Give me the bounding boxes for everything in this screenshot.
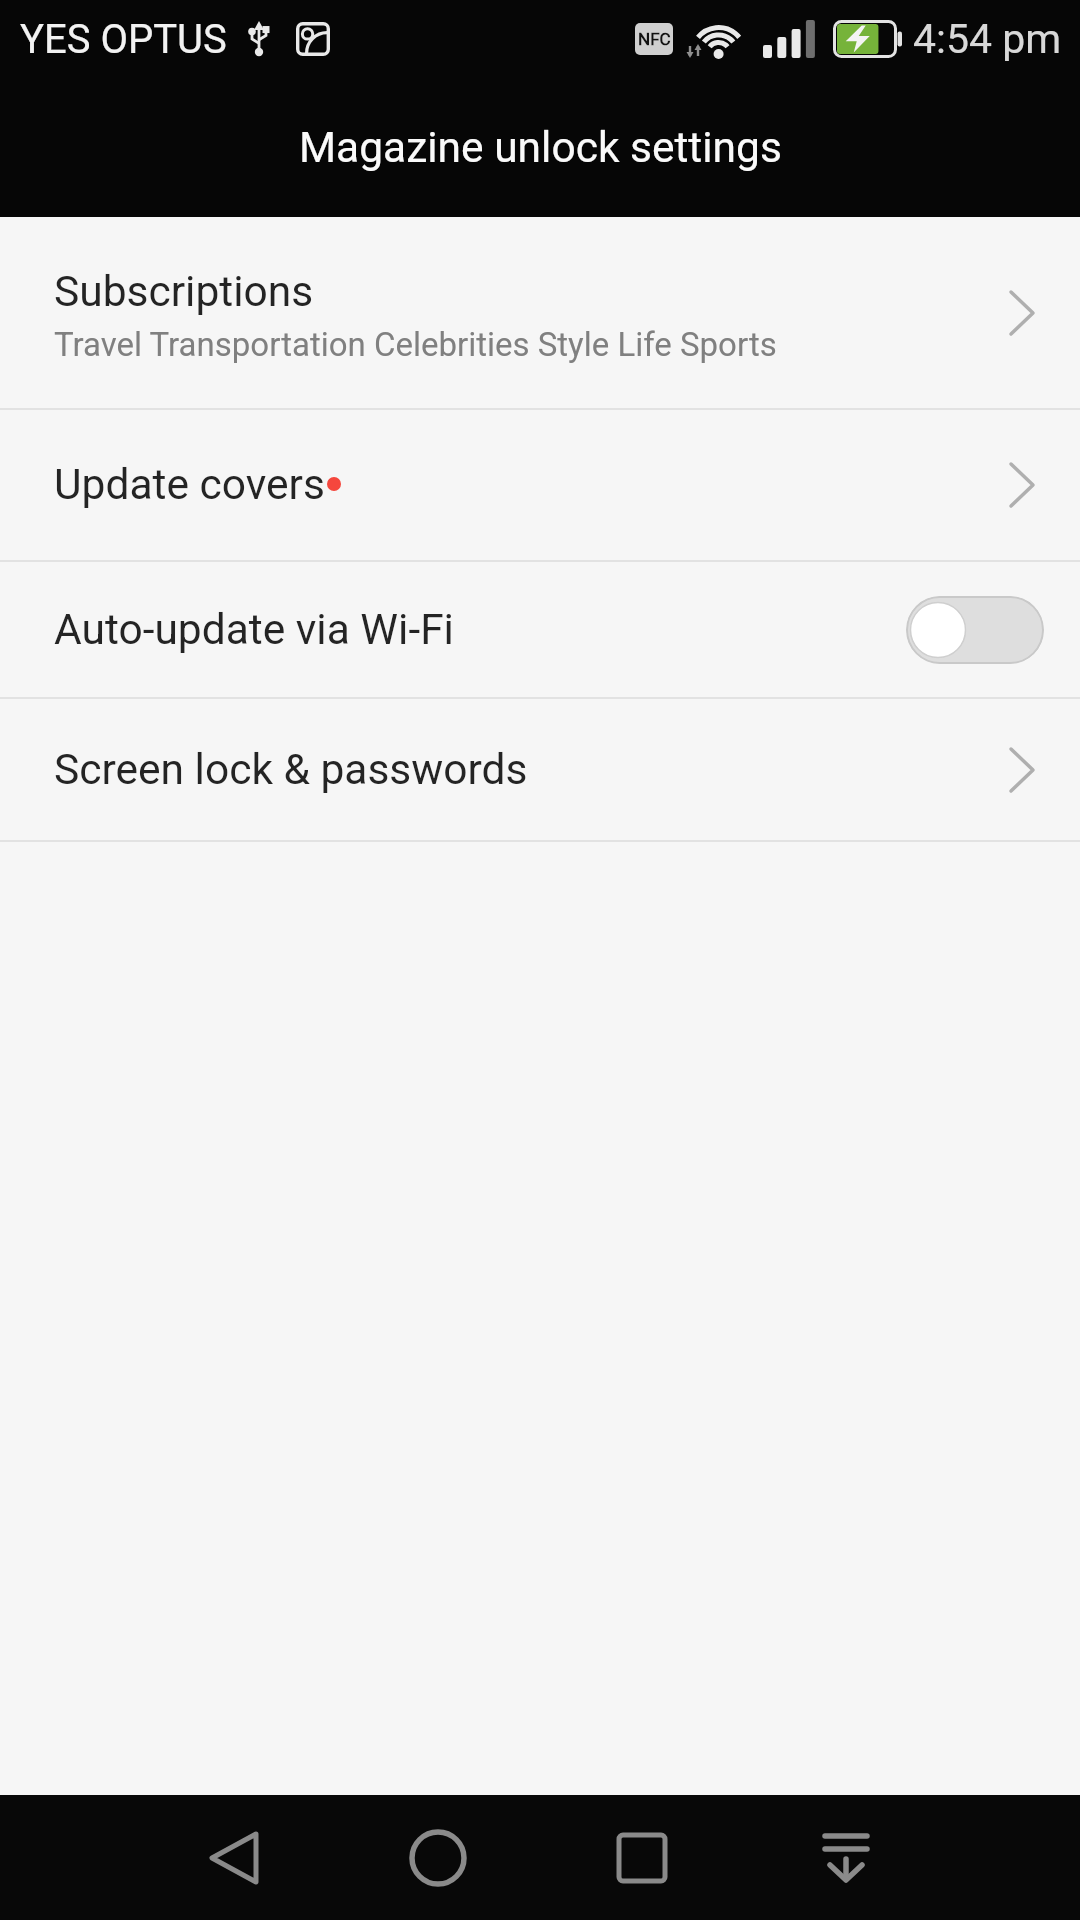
- button[interactable]: [540, 1795, 744, 1920]
- button[interactable]: [744, 1795, 948, 1920]
- staticText: Subscriptions: [54, 267, 314, 317]
- staticText: NFC: [638, 29, 671, 49]
- staticText: Update covers: [54, 460, 325, 510]
- staticText: Screen lock & passwords: [54, 745, 528, 795]
- button[interactable]: [132, 1795, 336, 1920]
- button[interactable]: [336, 1795, 540, 1920]
- staticText: Auto-update via Wi-Fi: [54, 605, 454, 655]
- button[interactable]: Subscriptions: [0, 217, 1080, 408]
- button[interactable]: Update covers: [0, 410, 1080, 560]
- staticText: 4:54 pm: [913, 15, 1062, 63]
- staticText: Magazine unlock settings: [299, 123, 782, 173]
- button[interactable]: [906, 596, 1044, 664]
- button[interactable]: Auto-update via Wi-Fi: [0, 562, 1080, 697]
- staticText: YES OPTUS: [20, 16, 227, 63]
- button[interactable]: Screen lock & passwords: [0, 699, 1080, 840]
- staticText: Travel Transportation Celebrities Style …: [54, 325, 777, 364]
